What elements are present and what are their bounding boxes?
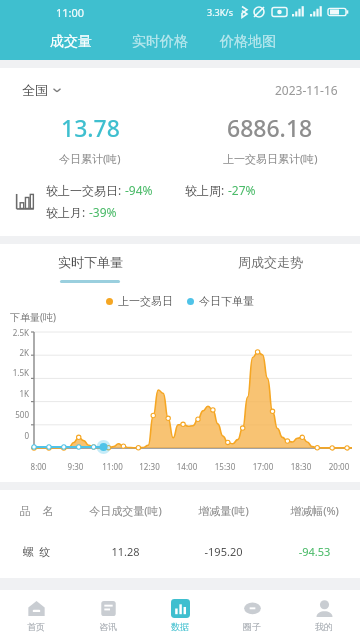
staticText: 8:00: [20, 461, 57, 472]
staticText: 17:00: [244, 461, 282, 472]
staticText: 较上周:: [185, 182, 228, 198]
staticText: -195.20: [178, 544, 269, 559]
staticText: 首页: [27, 621, 45, 632]
staticText: 18:30: [282, 461, 320, 472]
staticText: 增减量(吨): [178, 503, 269, 518]
button[interactable]: 实时下单量: [0, 244, 180, 280]
button[interactable]: 全国: [22, 82, 62, 98]
staticText: 较上月:: [46, 204, 89, 220]
staticText: 2.5K: [12, 327, 29, 338]
staticText: 11:00: [94, 461, 131, 472]
button[interactable]: 咨讯: [72, 590, 144, 640]
staticText: 9:30: [57, 461, 94, 472]
button[interactable]: 我的: [288, 590, 360, 640]
staticText: 价格地图: [220, 33, 276, 51]
staticText: 15:30: [206, 461, 244, 472]
button[interactable]: 圈子: [216, 590, 288, 640]
staticText: 实时下单量: [58, 254, 123, 270]
staticText: -94.53: [269, 544, 360, 559]
staticText: 今日成交量(吨): [73, 503, 178, 518]
staticText: 2K: [19, 347, 29, 358]
staticText: 11:00: [56, 5, 85, 20]
staticText: 今日下单量: [199, 294, 254, 308]
staticText: 品 名: [0, 503, 73, 518]
staticText: -27%: [228, 182, 256, 198]
staticText: 下单量(吨): [10, 310, 56, 324]
button[interactable]: 螺 纹: [0, 531, 360, 572]
staticText: 1.5K: [12, 367, 29, 378]
staticText: 0: [24, 430, 29, 441]
staticText: 12:30: [131, 461, 168, 472]
staticText: 咨讯: [99, 621, 117, 632]
staticText: 螺 纹: [0, 544, 73, 559]
staticText: 较上一交易日:: [46, 182, 125, 198]
staticText: 11.28: [73, 544, 178, 559]
button[interactable]: 成交量: [48, 29, 94, 55]
staticText: 20:00: [320, 461, 358, 472]
staticText: 实时价格: [132, 33, 188, 51]
staticText: 500: [15, 409, 29, 420]
staticText: 上一交易日: [118, 294, 173, 308]
staticText: 1K: [19, 388, 29, 399]
staticText: 数据: [171, 621, 189, 632]
staticText: 我的: [315, 621, 333, 632]
staticText: 3.3K/s: [207, 6, 233, 18]
button[interactable]: 数据: [144, 590, 216, 640]
staticText: 周成交走势: [238, 254, 303, 270]
staticText: 上一交易日累计(吨): [223, 151, 318, 166]
staticText: 6886.18: [227, 112, 313, 143]
staticText: 成交量: [50, 33, 92, 51]
staticText: 今日累计(吨): [59, 151, 121, 166]
staticText: 圈子: [243, 621, 261, 632]
button[interactable]: 实时价格: [130, 29, 190, 55]
staticText: 增减幅(%): [269, 503, 360, 518]
staticText: 2023-11-16: [275, 82, 338, 98]
staticText: 14:00: [168, 461, 206, 472]
staticText: 13.78: [61, 112, 120, 143]
button[interactable]: 周成交走势: [180, 244, 360, 280]
button[interactable]: 首页: [0, 590, 72, 640]
button[interactable]: 价格地图: [218, 29, 278, 55]
staticText: -94%: [125, 182, 153, 198]
staticText: -39%: [89, 204, 117, 220]
staticText: 全国: [22, 82, 48, 98]
